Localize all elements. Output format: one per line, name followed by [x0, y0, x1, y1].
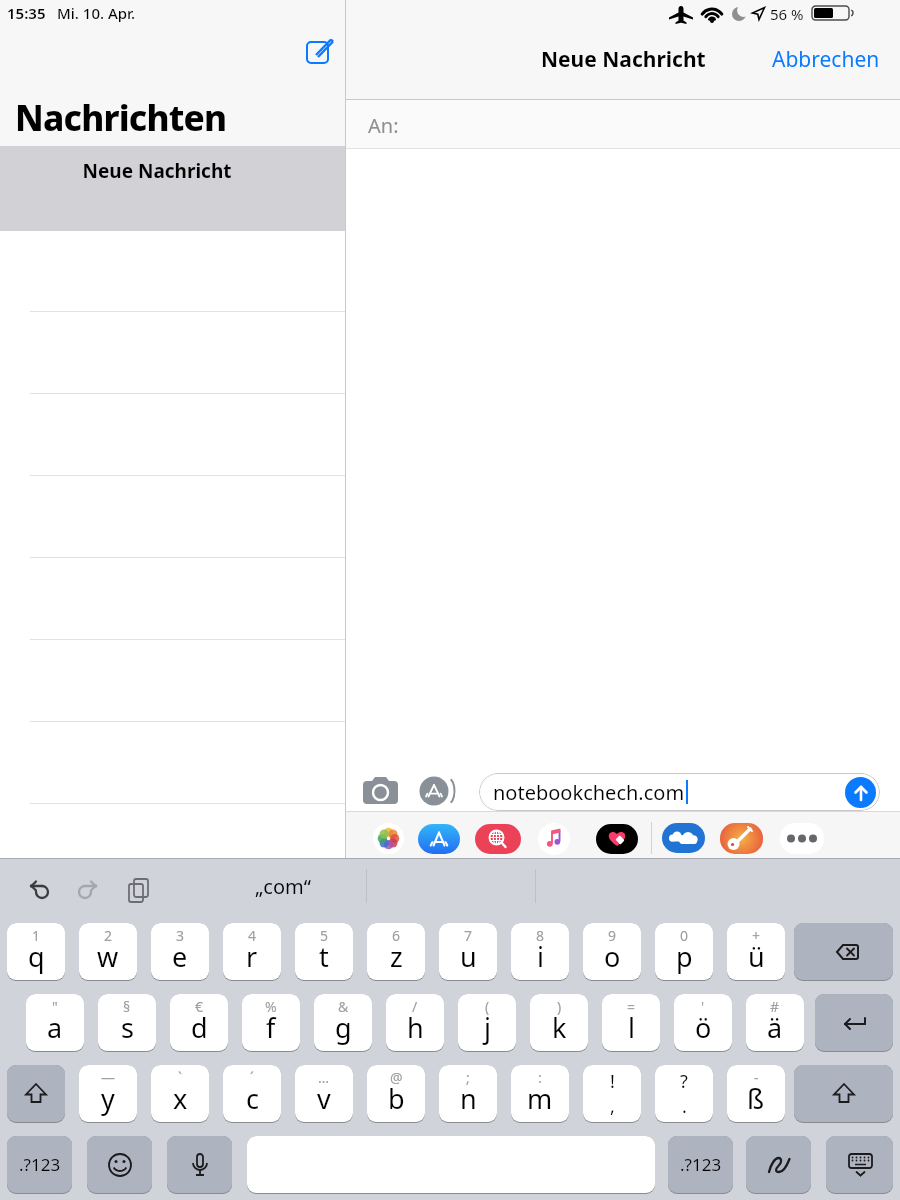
staticText: 6: [392, 926, 401, 945]
button[interactable]: ): [530, 994, 588, 1051]
button[interactable]: …: [295, 1065, 353, 1122]
button[interactable]: @: [367, 1065, 425, 1122]
staticText: g: [335, 1009, 352, 1046]
button[interactable]: [247, 1136, 655, 1193]
button[interactable]: .?123: [668, 1136, 733, 1193]
button[interactable]: €: [170, 994, 228, 1051]
button[interactable]: ?: [655, 1065, 713, 1122]
staticText: #: [770, 997, 780, 1016]
button[interactable]: #: [746, 994, 804, 1051]
button[interactable]: !: [583, 1065, 641, 1122]
staticText: 56 %: [770, 4, 804, 24]
button[interactable]: [475, 824, 521, 854]
button[interactable]: [826, 1136, 893, 1193]
button[interactable]: 1: [7, 923, 65, 980]
button[interactable]: Neue Nachricht: [0, 146, 345, 231]
button[interactable]: :: [511, 1065, 569, 1122]
button[interactable]: .?123: [7, 1136, 72, 1193]
button[interactable]: [363, 776, 401, 806]
button[interactable]: ": [26, 994, 84, 1051]
staticText: 1: [32, 926, 41, 945]
staticText: ä: [767, 1009, 783, 1046]
staticText: ß: [747, 1080, 765, 1117]
staticText: An:: [368, 112, 399, 139]
staticText: w: [97, 938, 119, 975]
button[interactable]: 3: [151, 923, 209, 980]
staticText: i: [537, 938, 544, 975]
button[interactable]: 5: [295, 923, 353, 980]
button[interactable]: 2: [79, 923, 137, 980]
staticText: 4: [248, 926, 257, 945]
staticText: q: [28, 938, 45, 975]
button[interactable]: `: [151, 1065, 209, 1122]
button[interactable]: 0: [655, 923, 713, 980]
staticText: Neue Nachricht: [541, 45, 706, 74]
button[interactable]: =: [602, 994, 660, 1051]
button[interactable]: ': [674, 994, 732, 1051]
staticText: f: [266, 1009, 276, 1046]
staticText: §: [123, 997, 131, 1016]
button[interactable]: ´: [223, 1065, 281, 1122]
button[interactable]: 8: [511, 923, 569, 980]
staticText: ": [52, 997, 58, 1016]
button[interactable]: [662, 823, 705, 853]
button[interactable]: [7, 1065, 65, 1122]
button[interactable]: [538, 823, 570, 855]
staticText: @: [390, 1068, 403, 1087]
staticText: Neue Nachricht: [0, 158, 314, 184]
button[interactable]: „com“: [200, 872, 366, 900]
button[interactable]: 6: [367, 923, 425, 980]
button[interactable]: notebookchech.com: [479, 773, 880, 811]
button[interactable]: &: [314, 994, 372, 1051]
button[interactable]: [746, 1136, 811, 1193]
button[interactable]: 4: [223, 923, 281, 980]
button[interactable]: +: [727, 923, 785, 980]
button[interactable]: [167, 1136, 232, 1193]
staticText: 8: [536, 926, 545, 945]
staticText: m: [527, 1080, 553, 1117]
button[interactable]: %: [242, 994, 300, 1051]
staticText: =: [627, 997, 636, 1016]
staticText: —: [101, 1068, 115, 1087]
staticText: 0: [680, 926, 689, 945]
button[interactable]: —: [79, 1065, 137, 1122]
button[interactable]: [815, 994, 893, 1051]
staticText: /: [412, 997, 418, 1016]
staticText: +: [752, 926, 761, 945]
staticText: d: [191, 1009, 208, 1046]
button[interactable]: [87, 1136, 152, 1193]
staticText: `: [178, 1068, 182, 1087]
button[interactable]: (: [458, 994, 516, 1051]
staticText: ö: [695, 1009, 712, 1046]
button[interactable]: ;: [439, 1065, 497, 1122]
button[interactable]: [306, 35, 334, 63]
button[interactable]: 9: [583, 923, 641, 980]
staticText: .: [682, 1094, 687, 1119]
staticText: u: [460, 938, 477, 975]
staticText: -: [754, 1068, 759, 1087]
staticText: 2: [104, 926, 113, 945]
button[interactable]: Abbrechen: [700, 44, 880, 74]
staticText: ü: [748, 938, 765, 975]
button[interactable]: [845, 777, 876, 808]
button[interactable]: [373, 823, 404, 854]
staticText: k: [552, 1009, 567, 1046]
staticText: notebookchech.com: [493, 779, 685, 806]
button[interactable]: [419, 776, 459, 806]
button[interactable]: /: [386, 994, 444, 1051]
staticText: ,: [610, 1094, 615, 1119]
button[interactable]: [596, 824, 638, 854]
button[interactable]: §: [98, 994, 156, 1051]
button[interactable]: [794, 1065, 893, 1122]
button[interactable]: 7: [439, 923, 497, 980]
staticText: ): [557, 997, 562, 1016]
staticText: y: [101, 1080, 115, 1117]
staticText: &: [338, 997, 349, 1016]
button[interactable]: [780, 823, 824, 854]
button[interactable]: [418, 824, 460, 854]
staticText: j: [484, 1009, 491, 1046]
staticText: p: [676, 938, 693, 975]
button[interactable]: [794, 923, 893, 980]
button[interactable]: [720, 823, 763, 854]
button[interactable]: -: [727, 1065, 785, 1122]
